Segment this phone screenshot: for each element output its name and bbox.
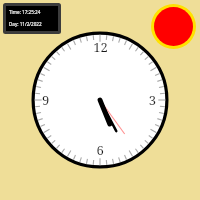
staticText: Time: 17:25:24	[9, 9, 41, 15]
button[interactable]: Alarm indicator	[154, 7, 193, 46]
staticText: Day: 11/2/2022	[9, 21, 42, 27]
button[interactable]: Time: 17:25:24	[6, 6, 58, 31]
